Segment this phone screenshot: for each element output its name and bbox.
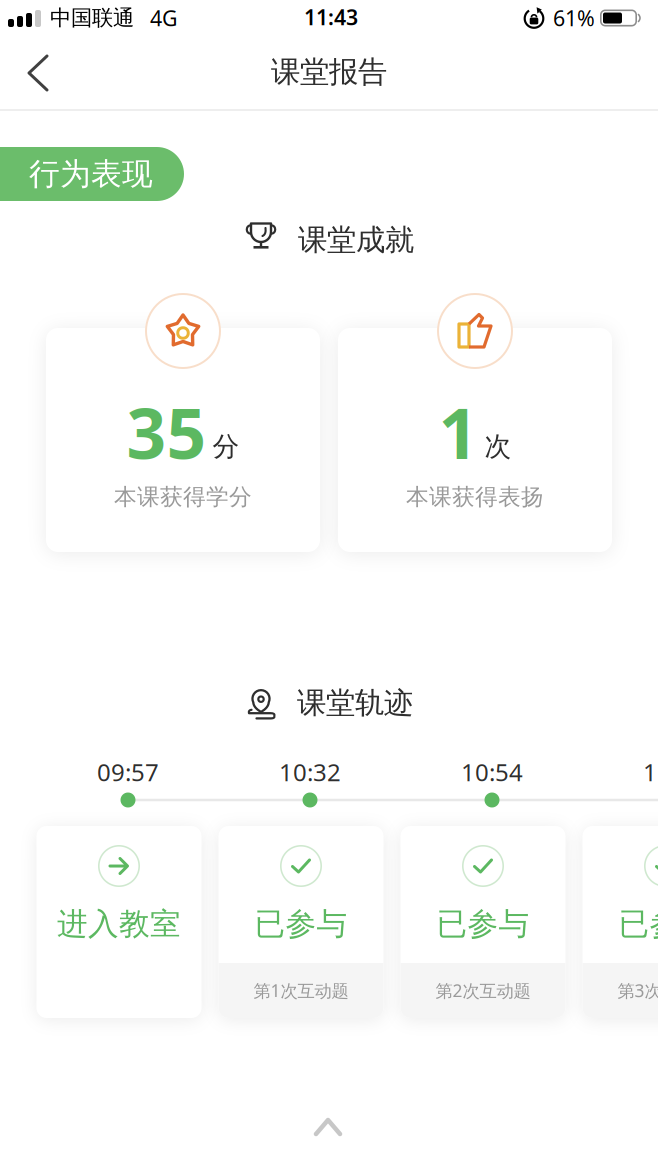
staticText: 09:57 xyxy=(97,756,159,788)
staticText: 次 xyxy=(484,430,511,463)
staticText: 10:32 xyxy=(279,756,341,788)
staticText: 已参与 xyxy=(254,905,347,943)
staticText: 已参与 xyxy=(436,905,529,943)
staticText: 11:43 xyxy=(304,3,358,31)
staticText: 35 xyxy=(126,386,206,478)
staticText: 10:54 xyxy=(461,756,523,788)
staticText: 已参与 xyxy=(618,905,658,943)
staticText: 1 xyxy=(438,386,478,478)
staticText: 行为表现 xyxy=(29,155,153,193)
staticText: 11:26 xyxy=(643,756,658,788)
staticText: 课堂成就 xyxy=(298,222,414,258)
staticText: 61% xyxy=(553,4,595,32)
staticText: 第1次互动题 xyxy=(253,979,348,1002)
staticText: 第2次互动题 xyxy=(435,979,530,1002)
staticText: 本课获得学分 xyxy=(114,483,252,511)
staticText: 第3次互动题 xyxy=(617,979,658,1002)
staticText: 中国联通 xyxy=(50,5,134,31)
button[interactable]: Collapse xyxy=(306,1109,350,1145)
staticText: 课堂报告 xyxy=(271,54,387,90)
staticText: 分 xyxy=(212,430,239,463)
staticText: 本课获得表扬 xyxy=(406,483,544,511)
staticText: 进入教室 xyxy=(57,905,181,943)
button[interactable]: 进入教室 xyxy=(36,826,201,1018)
button[interactable]: 第3次互动题 xyxy=(582,826,658,1018)
button[interactable]: 第2次互动题 xyxy=(400,826,565,1018)
button[interactable]: 第1次互动题 xyxy=(218,826,383,1018)
staticText: 4G xyxy=(150,4,178,32)
button[interactable]: Back xyxy=(8,43,68,103)
staticText: 课堂轨迹 xyxy=(297,685,413,721)
